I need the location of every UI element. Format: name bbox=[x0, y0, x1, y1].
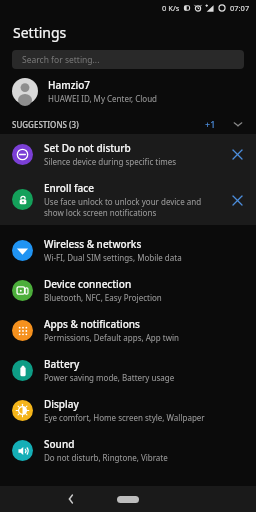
button[interactable]: Search for setting... bbox=[12, 50, 244, 69]
staticText: HUAWEI ID, My Center, Cloud bbox=[48, 93, 158, 104]
staticText: Battery bbox=[44, 357, 80, 371]
button[interactable]: Back bbox=[60, 488, 82, 510]
button[interactable]: Display bbox=[0, 390, 256, 430]
button[interactable]: Apps & notifications bbox=[0, 310, 256, 350]
button[interactable]: Set Do not disturb bbox=[0, 134, 256, 174]
staticText: Apps & notifications bbox=[44, 317, 140, 331]
button[interactable]: Battery bbox=[0, 350, 256, 390]
button[interactable]: Sound bbox=[0, 430, 256, 470]
staticText: Sound bbox=[44, 437, 75, 451]
staticText: Do not disturb, Ringtone, Vibrate bbox=[44, 452, 168, 463]
staticText: Search for setting... bbox=[22, 54, 100, 66]
staticText: Settings bbox=[13, 23, 67, 42]
staticText: 07:07 bbox=[230, 3, 250, 13]
staticText: show lock screen notifications bbox=[44, 207, 157, 218]
staticText: Permissions, Default apps, App twin bbox=[44, 332, 179, 343]
staticText: Use face unlock to unlock your device an… bbox=[44, 196, 202, 207]
button[interactable]: Device connection bbox=[0, 270, 256, 310]
staticText: Device connection bbox=[44, 277, 132, 291]
staticText: Wireless & networks bbox=[44, 237, 142, 251]
button[interactable]: Enroll face bbox=[0, 174, 256, 225]
staticText: Enroll face bbox=[44, 181, 94, 195]
staticText: Power saving mode, Battery usage bbox=[44, 372, 175, 383]
staticText: Eye comfort, Home screen style, Wallpape… bbox=[44, 412, 205, 423]
staticText: Wi-FI, Dual SIM settings, Mobile data bbox=[44, 252, 182, 263]
staticText: Display bbox=[44, 397, 79, 411]
staticText: Silence device during specific times bbox=[44, 156, 177, 167]
button[interactable]: Expand suggestions bbox=[230, 116, 246, 132]
staticText: Hamzio7 bbox=[48, 78, 90, 92]
staticText: SUGGESTIONS (3) bbox=[12, 119, 79, 130]
staticText: Set Do not disturb bbox=[44, 141, 131, 155]
button[interactable]: Wireless & networks bbox=[0, 230, 256, 270]
button[interactable]: Home bbox=[113, 491, 143, 507]
button[interactable]: Hamzio7 bbox=[0, 71, 256, 111]
button[interactable]: Dismiss Enroll face bbox=[228, 191, 246, 209]
staticText: Bluetooth, NFC, Easy Projection bbox=[44, 292, 162, 303]
staticText: 0 K/s bbox=[162, 3, 180, 13]
button[interactable]: Dismiss Set Do not disturb bbox=[228, 145, 246, 163]
button[interactable]: +1 bbox=[205, 118, 216, 130]
